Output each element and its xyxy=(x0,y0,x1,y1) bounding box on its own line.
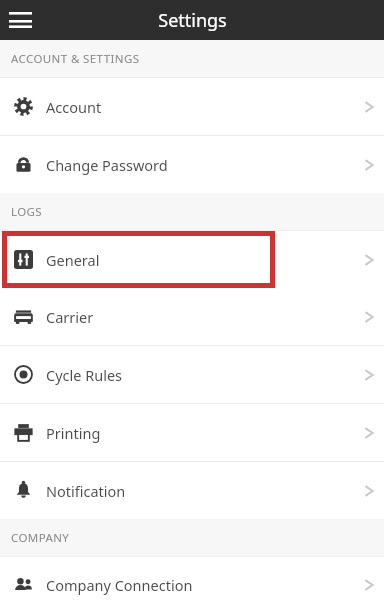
button[interactable]: General xyxy=(0,231,384,288)
button[interactable]: Account xyxy=(0,78,384,135)
staticText: General xyxy=(46,250,354,270)
staticText: ACCOUNT & SETTINGS xyxy=(11,51,140,67)
button[interactable]: Printing xyxy=(0,404,384,461)
staticText: Notification xyxy=(46,481,354,501)
button[interactable]: Carrier xyxy=(0,288,384,345)
staticText: Carrier xyxy=(46,307,354,327)
button[interactable]: Cycle Rules xyxy=(0,346,384,403)
staticText: Cycle Rules xyxy=(46,365,354,385)
button[interactable]: Company Connection xyxy=(0,557,384,613)
staticText: LOGS xyxy=(11,204,43,220)
button[interactable]: Change Password xyxy=(0,136,384,193)
staticText: Account xyxy=(46,97,354,117)
button[interactable]: Open navigation menu xyxy=(0,0,40,40)
staticText: Printing xyxy=(46,423,354,443)
staticText: Settings xyxy=(158,8,227,33)
button[interactable]: Notification xyxy=(0,462,384,519)
staticText: Change Password xyxy=(46,155,354,175)
staticText: Company Connection xyxy=(46,575,354,595)
staticText: COMPANY xyxy=(11,530,70,546)
